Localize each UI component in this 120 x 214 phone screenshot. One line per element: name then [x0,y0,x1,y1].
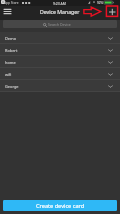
staticText: home [5,60,16,65]
button[interactable]: Search Device [3,20,117,28]
button[interactable]: home [0,56,120,68]
button[interactable]: Add device [106,6,117,17]
staticText: 9:23 AM [53,1,66,6]
staticText: Device Manager [40,8,80,15]
staticText: Search Device [48,22,71,27]
button[interactable]: George [0,80,120,92]
button[interactable]: Create device card [3,200,117,211]
staticText: George [5,84,19,89]
button[interactable]: Menu [3,7,12,16]
staticText: Create device card [36,202,85,210]
button[interactable]: Robert [0,44,120,56]
staticText: App Store [4,1,19,5]
staticText: Demo [5,36,17,41]
staticText: Robert [5,48,18,53]
staticText: wifi [5,72,12,77]
staticText: 92% [97,1,104,5]
button[interactable]: Demo [0,32,120,44]
button[interactable]: wifi [0,68,120,80]
